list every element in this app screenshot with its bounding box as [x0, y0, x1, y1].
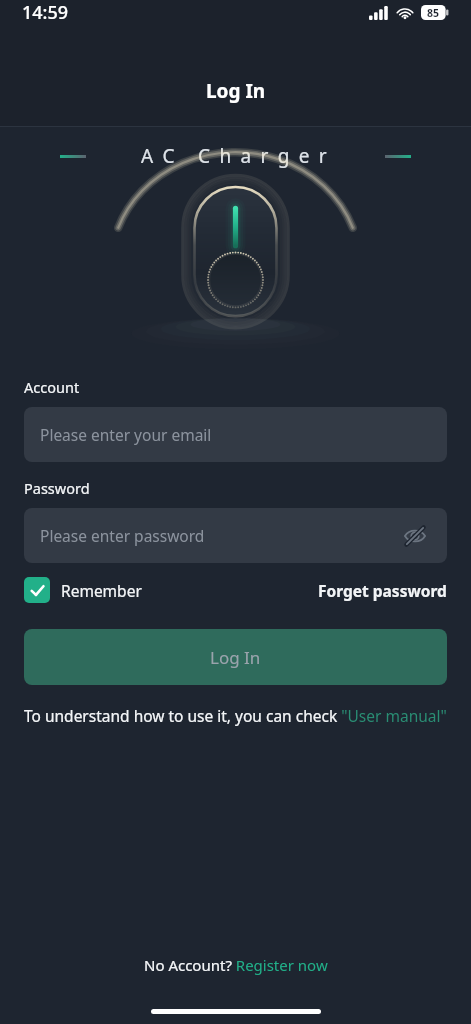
staticText: Password [24, 478, 90, 498]
staticText: To understand how to use it, you can che… [24, 705, 447, 726]
staticText: Log In [206, 78, 266, 104]
staticText: Please enter your email [40, 424, 212, 445]
staticText: Log In [210, 646, 261, 669]
button[interactable]: Please enter your email [24, 407, 447, 462]
staticText: Account [24, 377, 80, 397]
staticText: 14:59 [22, 0, 69, 25]
staticText: Remember [61, 580, 142, 601]
button[interactable]: Remember [24, 577, 142, 603]
staticText: 85 [427, 6, 440, 20]
button[interactable]: No Account? Register now [132, 949, 340, 981]
staticText: No Account? Register now [144, 955, 328, 975]
staticText: Forget password [318, 580, 447, 601]
button[interactable]: Forget password [318, 580, 447, 601]
button[interactable]: Show password [399, 520, 431, 552]
button[interactable]: Log In [24, 629, 447, 685]
button[interactable]: To understand how to use it, you can che… [24, 705, 447, 726]
button[interactable]: Please enter password [24, 508, 447, 563]
staticText: Please enter password [40, 525, 205, 546]
staticText: A C C h a r g e r [141, 143, 329, 169]
